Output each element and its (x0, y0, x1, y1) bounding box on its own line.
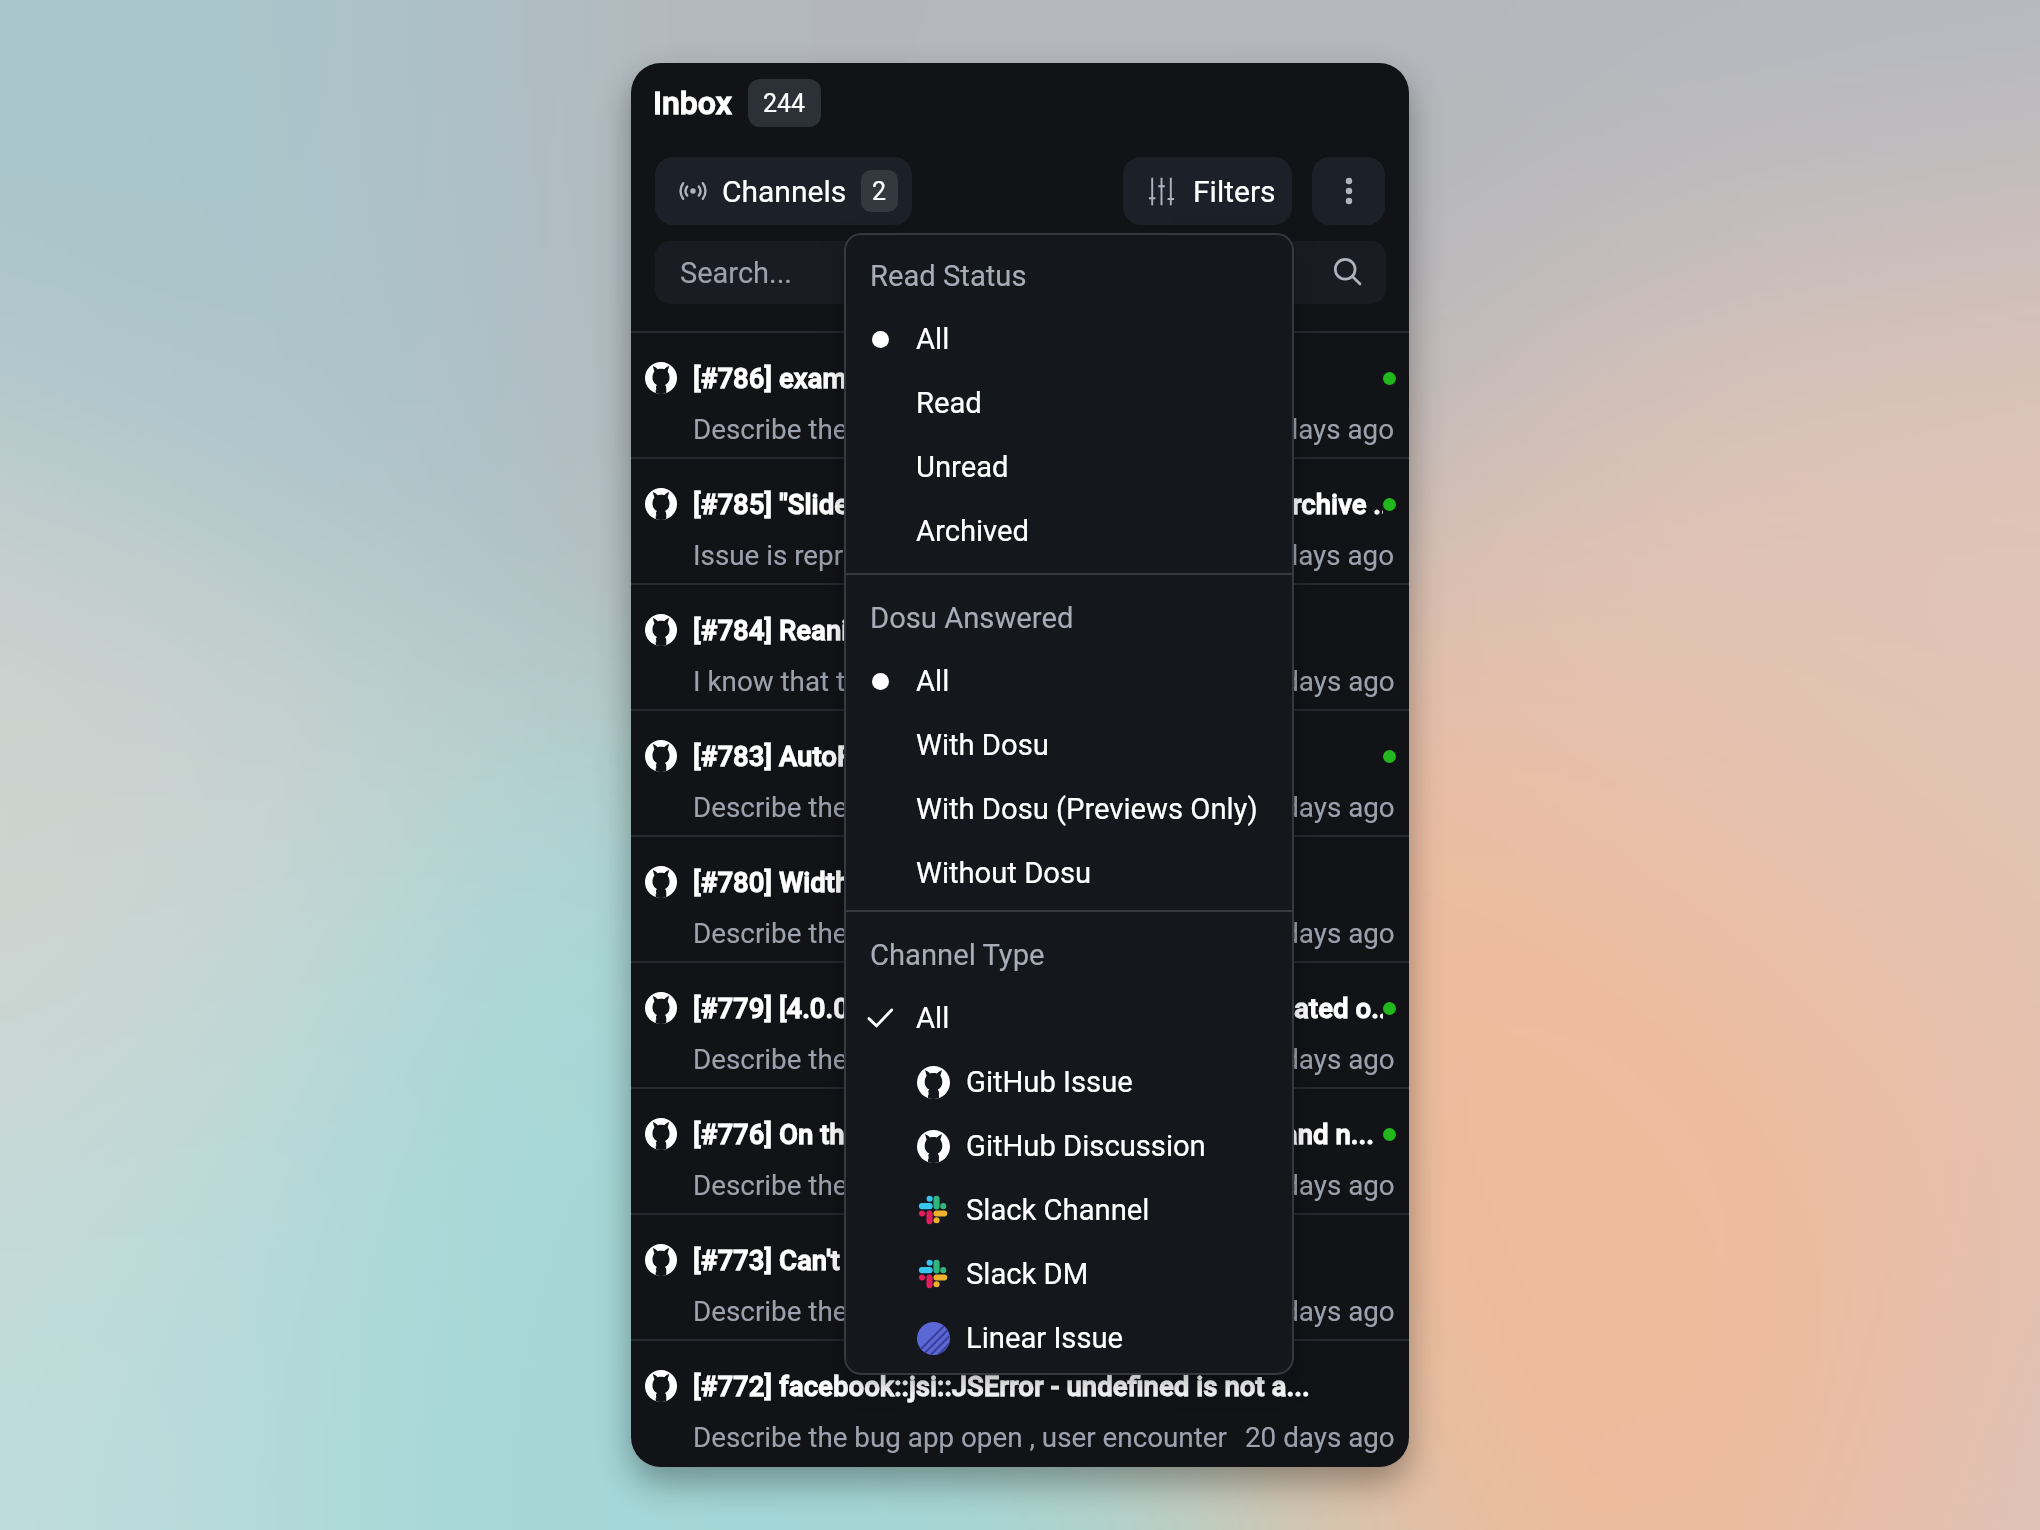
staticText: Read (916, 386, 982, 420)
staticText: [#783] AutoFill hints are ignored here (693, 740, 1150, 772)
staticText: 17 days ago (1245, 1043, 1395, 1076)
staticText: All (916, 664, 950, 698)
staticText: [#784] Reanimated worklet fails on build (693, 614, 1191, 646)
staticText: Without Dosu (916, 856, 1092, 890)
staticText: [#779] [4.0.0] Gradle sync keeps failing… (693, 992, 1383, 1024)
button[interactable]: [#786] example app crashing right on lau… (631, 333, 1409, 457)
staticText: Issue is reproducible on Android 14 devi… (693, 539, 1229, 572)
button[interactable]: GitHub Discussion (844, 1114, 1294, 1178)
staticText: Describe the bug a crash occurs when the… (693, 413, 1244, 446)
staticText: 15 days ago (1245, 917, 1395, 950)
staticText: Describe the bug layout shifts when resi… (693, 917, 1229, 950)
staticText: Filters (1193, 174, 1276, 209)
staticText: [#772] facebook::jsi::JSError - undefine… (693, 1370, 1310, 1402)
staticText: Read Status (870, 259, 1027, 293)
button[interactable]: Archived (844, 499, 1294, 563)
button[interactable]: [#780] Width of the container is wrong (631, 837, 1409, 961)
staticText: [#786] example app crashing right on lau… (693, 362, 1242, 394)
staticText: Channel Type (870, 938, 1045, 972)
staticText: Describe the bug app open , user encount… (693, 1421, 1229, 1454)
staticText: 9 days ago (1260, 539, 1395, 572)
button[interactable]: Read (844, 371, 1294, 435)
staticText: 18 days ago (1245, 1169, 1395, 1202)
button[interactable]: Unread (844, 435, 1294, 499)
button[interactable]: Slack DM (844, 1242, 1294, 1306)
staticText: 20 days ago (1245, 1421, 1395, 1454)
button[interactable]: Channels (655, 157, 912, 225)
staticText: [#785] "Slide" gesture is unresponsive a… (693, 488, 1383, 520)
staticText: With Dosu (916, 728, 1049, 762)
staticText: [#780] Width of the container is wrong (693, 866, 1164, 898)
staticText: [#773] Can't build for iOS simulator (693, 1244, 1123, 1276)
button[interactable]: With Dosu (844, 713, 1294, 777)
staticText: Archived (916, 514, 1030, 548)
staticText: With Dosu (Previews Only) (916, 792, 1258, 826)
staticText: Describe the bug build error right after… (693, 1043, 1208, 1076)
staticText: 14 days ago (1245, 791, 1395, 824)
button[interactable]: [#773] Can't build for iOS simulator (631, 1215, 1409, 1339)
staticText: All (916, 1001, 950, 1035)
staticText: I know that this has been reported befor… (693, 665, 1229, 698)
other: Search (1331, 256, 1364, 289)
staticText: Channels (722, 174, 847, 209)
staticText: 12 days ago (1245, 665, 1395, 698)
staticText: Search... (680, 256, 793, 290)
staticText: Describe the bug scrolling is janky on l… (693, 1169, 1219, 1202)
button[interactable]: [#772] facebook::jsi::JSError - undefine… (631, 1341, 1409, 1465)
staticText: [#776] On the newest release the scroll … (693, 1118, 1374, 1150)
staticText: Slack Channel (966, 1193, 1150, 1227)
staticText: GitHub Issue (966, 1065, 1133, 1099)
button[interactable]: Without Dosu (844, 841, 1294, 905)
staticText: Dosu Answered (870, 601, 1074, 635)
staticText: Linear Issue (966, 1321, 1124, 1355)
button[interactable]: [#783] AutoFill hints are ignored here (631, 711, 1409, 835)
button[interactable]: All (844, 986, 1294, 1050)
staticText: GitHub Discussion (966, 1129, 1206, 1163)
button[interactable]: Slack Channel (844, 1178, 1294, 1242)
staticText: 8 days ago (1260, 413, 1395, 446)
button[interactable]: All (844, 649, 1294, 713)
button[interactable]: [#776] On the newest release the scroll … (631, 1089, 1409, 1213)
button[interactable]: All (844, 307, 1294, 371)
button[interactable]: Filters (1123, 157, 1292, 225)
staticText: Describe the bug autofill never triggers… (693, 791, 1207, 824)
staticText: Inbox (653, 84, 732, 122)
button[interactable]: [#785] "Slide" gesture is unresponsive a… (631, 459, 1409, 583)
button[interactable]: [#784] Reanimated worklet fails on build (631, 585, 1409, 709)
staticText: Describe the bug pod install keeps faili… (693, 1295, 1229, 1328)
button[interactable]: With Dosu (Previews Only) (844, 777, 1294, 841)
staticText: 2 (872, 177, 887, 206)
staticText: All (916, 322, 950, 356)
button[interactable]: [#779] [4.0.0] Gradle sync keeps failing… (631, 963, 1409, 1087)
staticText: Unread (916, 450, 1009, 484)
button[interactable]: Linear Issue (844, 1306, 1294, 1370)
button[interactable]: GitHub Issue (844, 1050, 1294, 1114)
button[interactable]: Search... (655, 241, 1386, 304)
staticText: 244 (763, 89, 806, 118)
staticText: 19 days ago (1245, 1295, 1395, 1328)
button[interactable]: More options (1312, 157, 1385, 225)
staticText: Slack DM (966, 1257, 1089, 1291)
